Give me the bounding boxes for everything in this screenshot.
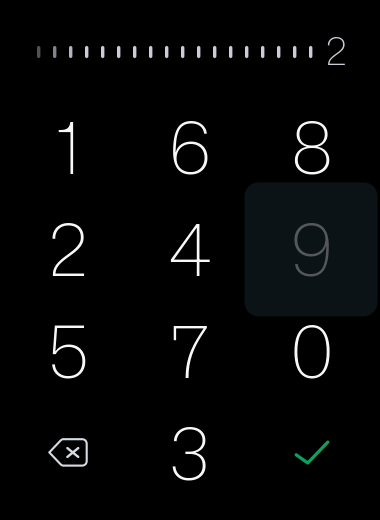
staticText: 2 xyxy=(49,198,87,299)
staticText: 1 xyxy=(56,96,79,197)
button[interactable]: Delete xyxy=(7,401,129,503)
staticText: 4 xyxy=(168,198,211,299)
staticText: 2 xyxy=(326,23,347,77)
staticText: 6 xyxy=(168,96,211,197)
staticText: 3 xyxy=(169,402,210,503)
staticText: 7 xyxy=(170,300,209,401)
button[interactable]: 7 xyxy=(129,299,251,401)
button[interactable]: 6 xyxy=(129,95,251,197)
button[interactable]: 9 xyxy=(251,197,373,299)
button[interactable]: Confirm xyxy=(251,401,373,503)
staticText: 9 xyxy=(290,198,333,299)
button[interactable]: 0 xyxy=(251,299,373,401)
button[interactable]: 2 xyxy=(7,197,129,299)
button[interactable]: 4 xyxy=(129,197,251,299)
staticText: 0 xyxy=(290,300,334,401)
button[interactable]: 3 xyxy=(129,401,251,503)
staticText: 8 xyxy=(291,96,333,197)
button[interactable]: 1 xyxy=(7,95,129,197)
button[interactable]: 8 xyxy=(251,95,373,197)
staticText: 5 xyxy=(47,300,88,401)
button[interactable]: 5 xyxy=(7,299,129,401)
